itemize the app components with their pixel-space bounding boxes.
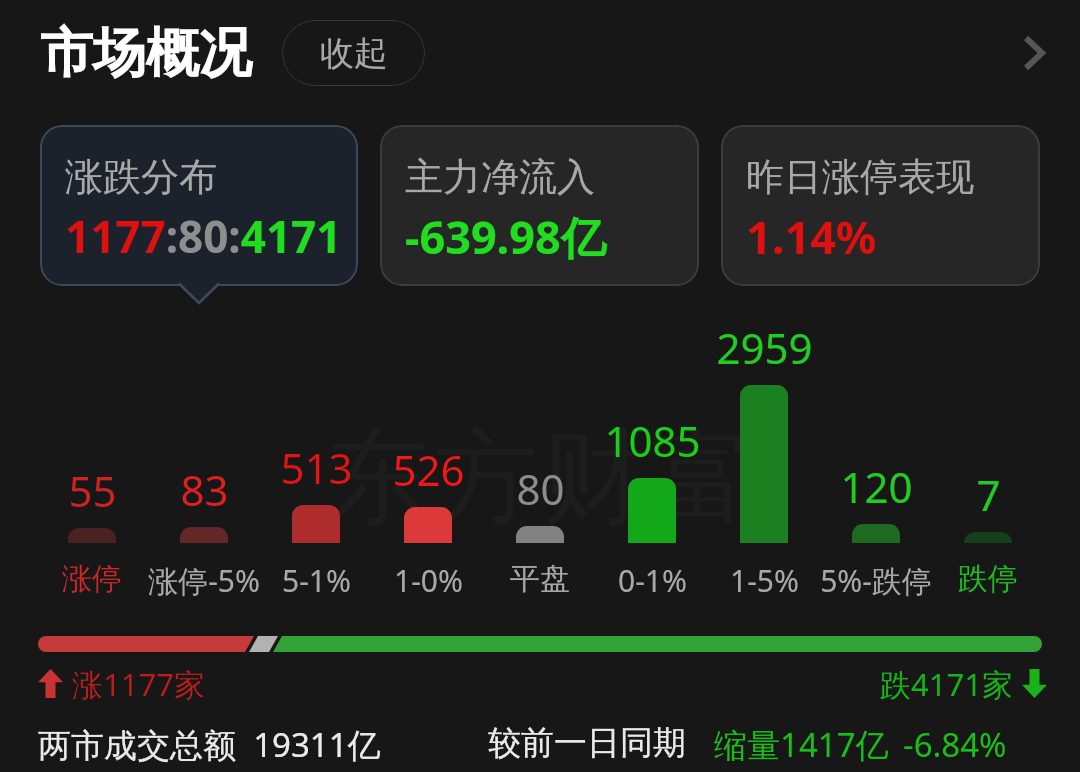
button[interactable]: 收起 — [282, 20, 425, 86]
staticText: 涨1177家 — [72, 663, 205, 703]
button[interactable]: 526 — [372, 0, 484, 620]
button[interactable]: 2959 — [708, 0, 820, 620]
staticText: 7 — [976, 466, 1001, 523]
button[interactable]: More details — [1002, 21, 1066, 85]
staticText: 东方财富 — [324, 413, 756, 544]
staticText: 1177:80:4171 — [65, 206, 342, 266]
button[interactable]: 7 — [932, 0, 1044, 620]
staticText: 2959 — [716, 319, 813, 376]
button[interactable]: Advancing stocks — [38, 663, 205, 703]
button[interactable]: 513 — [260, 0, 372, 620]
staticText: 两市成交总额 19311亿 — [38, 722, 381, 767]
staticText: 跌停 — [958, 560, 1018, 598]
other: Declining stocks — [1022, 669, 1047, 698]
button[interactable]: 120 — [820, 0, 932, 620]
button[interactable]: 83 — [148, 0, 260, 620]
staticText: 1085 — [604, 412, 701, 469]
staticText: 跌4171家 — [880, 663, 1013, 703]
staticText: 83 — [180, 461, 229, 518]
staticText: 80 — [516, 460, 565, 517]
staticText: 涨跌分布 — [65, 153, 217, 201]
staticText: 涨停-5% — [148, 560, 260, 601]
button[interactable]: 55 — [36, 0, 148, 620]
staticText: 1-5% — [730, 560, 799, 601]
staticText: 5%-跌停 — [820, 560, 932, 601]
staticText: 526 — [392, 441, 465, 498]
staticText: 昨日涨停表现 — [746, 153, 974, 201]
staticText: 0-1% — [618, 560, 687, 601]
staticText: -639.98亿 — [405, 206, 606, 267]
button[interactable]: 跌4171家 — [880, 663, 1047, 703]
staticText: 平盘 — [510, 560, 570, 598]
staticText: 55 — [68, 462, 117, 519]
staticText: 较前一日同期 — [488, 722, 686, 764]
other: Advancing stocks — [38, 669, 63, 698]
button[interactable]: 1085 — [596, 0, 708, 620]
button[interactable]: 涨跌分布 — [40, 125, 358, 286]
staticText: 1.14% — [746, 206, 877, 267]
staticText: 513 — [280, 439, 353, 496]
staticText: 1-0% — [394, 560, 463, 601]
button[interactable]: 80 — [484, 0, 596, 620]
staticText: 市场概况 — [40, 20, 252, 87]
button[interactable]: 主力净流入 — [380, 125, 699, 286]
staticText: 5-1% — [282, 560, 351, 601]
staticText: 收起 — [320, 32, 388, 75]
staticText: 涨停 — [62, 560, 122, 598]
staticText: 主力净流入 — [405, 153, 595, 201]
button[interactable]: 昨日涨停表现 — [721, 125, 1040, 286]
staticText: 120 — [840, 458, 913, 515]
staticText: 缩量1417亿 — [714, 722, 889, 767]
staticText: -6.84% — [903, 722, 1007, 767]
